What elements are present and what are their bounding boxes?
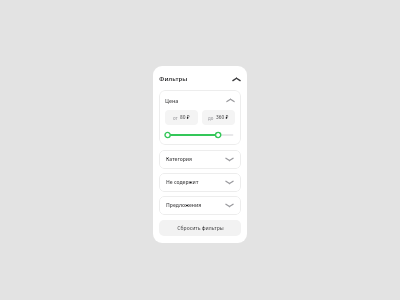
staticText: до <box>208 115 214 121</box>
staticText: Не содержит <box>166 179 199 186</box>
button[interactable]: Цена <box>165 96 235 105</box>
other: Свернуть цену <box>226 96 235 105</box>
button[interactable]: Категория <box>159 150 241 169</box>
staticText: 80 ₽ <box>180 114 190 121</box>
staticText: Категория <box>166 156 193 163</box>
staticText: 360 ₽ <box>216 114 229 121</box>
button[interactable]: до <box>202 110 235 125</box>
button[interactable]: Предложения <box>159 196 241 215</box>
staticText: от <box>173 115 178 121</box>
staticText: Предложения <box>166 202 202 209</box>
button[interactable]: от <box>165 110 198 125</box>
button[interactable]: Фильтры <box>159 73 241 85</box>
staticText: Фильтры <box>159 75 188 83</box>
staticText: Цена <box>165 97 179 104</box>
button[interactable]: Не содержит <box>159 173 241 192</box>
staticText: Сбросить фильтры <box>177 225 224 232</box>
button[interactable]: Сбросить фильтры <box>159 220 241 236</box>
other: Свернуть фильтры <box>232 75 241 84</box>
button[interactable]: Диапазон цены <box>165 131 235 139</box>
